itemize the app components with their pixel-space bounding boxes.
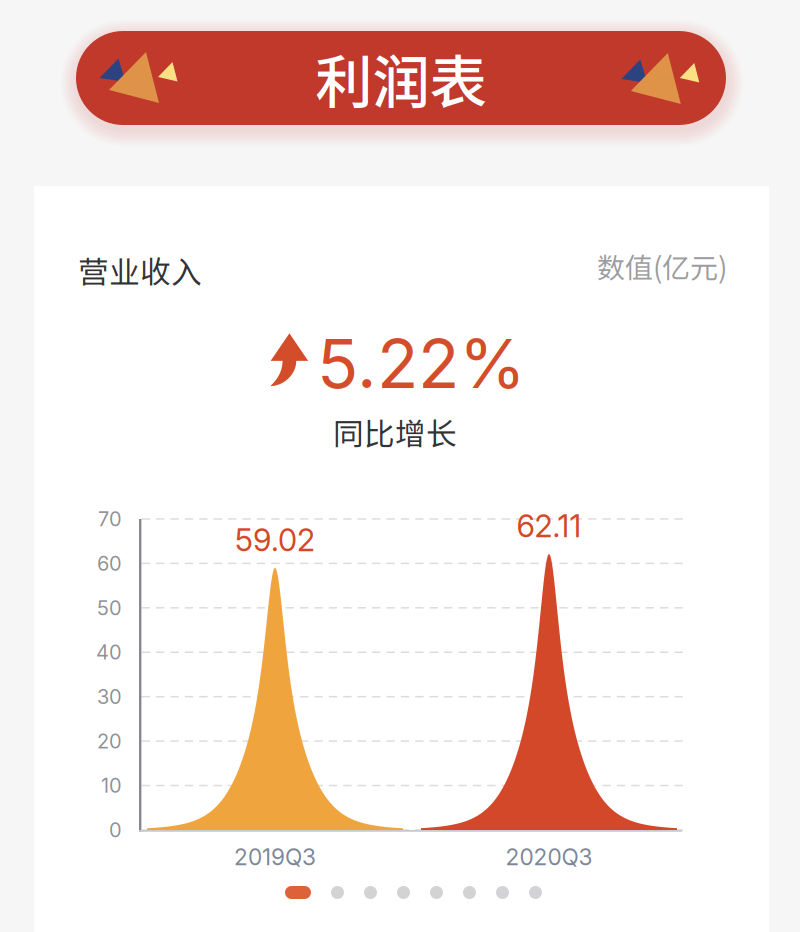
staticText: 20 (97, 729, 122, 753)
button[interactable]: 利润表 (76, 31, 726, 125)
staticText: 0 (109, 818, 122, 842)
button[interactable]: Page 8 (529, 886, 542, 899)
button[interactable]: Page 5 (430, 886, 443, 899)
staticText: 同比增长 (333, 410, 457, 454)
staticText: 60 (97, 551, 122, 575)
staticText: 2020Q3 (505, 843, 592, 871)
button[interactable]: Page 3 (364, 886, 377, 899)
button[interactable]: Page 7 (496, 886, 509, 899)
button[interactable]: Page 4 (397, 886, 410, 899)
staticText: 营业收入 (78, 248, 202, 292)
button[interactable]: Page 1 (285, 886, 311, 899)
staticText: 70 (98, 507, 122, 531)
button[interactable]: Page 6 (463, 886, 476, 899)
staticText: 59.02 (235, 521, 315, 558)
staticText: 5.22% (317, 322, 526, 404)
staticText: 50 (97, 596, 122, 620)
staticText: 10 (101, 773, 122, 798)
staticText: 利润表 (315, 36, 486, 119)
staticText: 40 (96, 640, 122, 664)
staticText: 62.11 (516, 507, 581, 544)
staticText: 30 (97, 685, 122, 709)
staticText: 数值(亿元) (597, 246, 727, 286)
button[interactable]: Page 2 (331, 886, 344, 899)
staticText: 2019Q3 (234, 843, 316, 871)
